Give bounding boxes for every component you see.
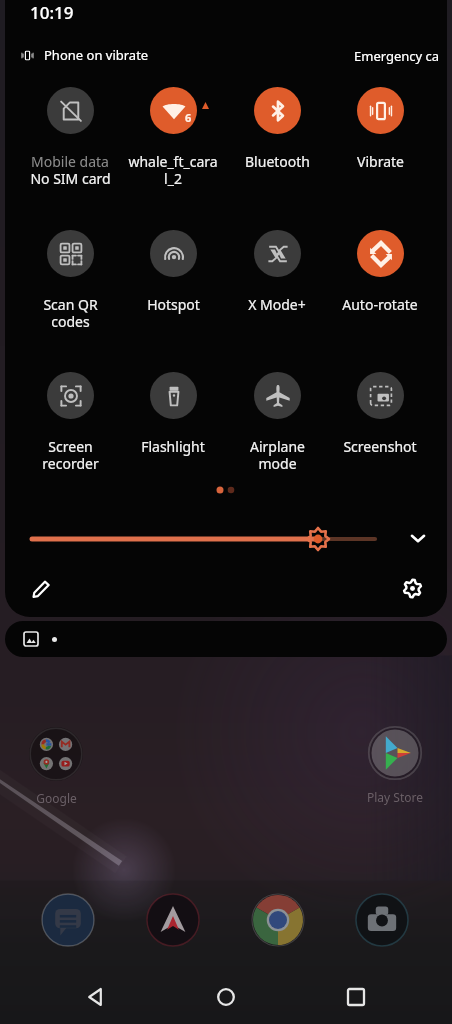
button[interactable] [5, 621, 447, 657]
staticText: Auto-rotate [342, 295, 418, 314]
button[interactable]: Auto-rotate [330, 230, 430, 314]
button[interactable]: Google [18, 727, 94, 806]
staticText: Emergency ca [354, 47, 440, 65]
staticText: Flashlight [141, 437, 205, 456]
button[interactable]: Hotspot [123, 230, 223, 314]
staticText: l_2 [164, 169, 182, 188]
button[interactable]: X Mode+ [227, 230, 327, 314]
button[interactable]: Expand [401, 521, 435, 555]
staticText: X Mode+ [248, 295, 306, 314]
button[interactable]: Mobile data [20, 87, 120, 190]
button[interactable]: Home [161, 973, 291, 1021]
staticText: Hotspot [147, 295, 200, 314]
staticText: codes [51, 312, 90, 331]
staticText: Airplane [250, 437, 305, 456]
button[interactable]: Flashlight [123, 372, 223, 456]
staticText: Play Store [367, 789, 423, 805]
button[interactable]: Recent apps [291, 973, 421, 1021]
staticText: Mobile data [31, 152, 109, 171]
staticText: Vibrate [357, 152, 404, 171]
staticText: mode [258, 454, 297, 473]
button[interactable]: Bluetooth [227, 87, 327, 171]
staticText: Screen [48, 437, 93, 456]
button[interactable]: Play Store [357, 726, 433, 805]
button[interactable]: Scan QR [20, 230, 120, 333]
staticText: Scan QR [43, 295, 98, 314]
staticText: No SIM card [30, 169, 111, 188]
staticText: whale_ft_cara [128, 152, 218, 171]
staticText: Google [36, 790, 77, 806]
button[interactable]: Browser [146, 893, 200, 947]
button[interactable]: whale_ft_cara [123, 87, 223, 190]
button[interactable]: Screen [20, 372, 120, 475]
button[interactable]: Settings [395, 571, 429, 605]
staticText: Screenshot [343, 437, 417, 456]
staticText: Bluetooth [245, 152, 310, 171]
button[interactable]: Edit tiles [24, 571, 58, 605]
button[interactable]: Airplane [227, 372, 327, 475]
staticText: 6 [185, 110, 192, 125]
button[interactable]: Messages [41, 893, 95, 947]
staticText: 10:19 [30, 1, 74, 24]
button[interactable]: Back [31, 973, 161, 1021]
button[interactable]: Camera [355, 893, 409, 947]
button[interactable]: Screenshot [330, 372, 430, 456]
staticText: recorder [42, 454, 99, 473]
button[interactable]: Chrome [251, 893, 305, 947]
staticText: Phone on vibrate [44, 46, 149, 64]
button[interactable]: Vibrate [330, 87, 430, 171]
